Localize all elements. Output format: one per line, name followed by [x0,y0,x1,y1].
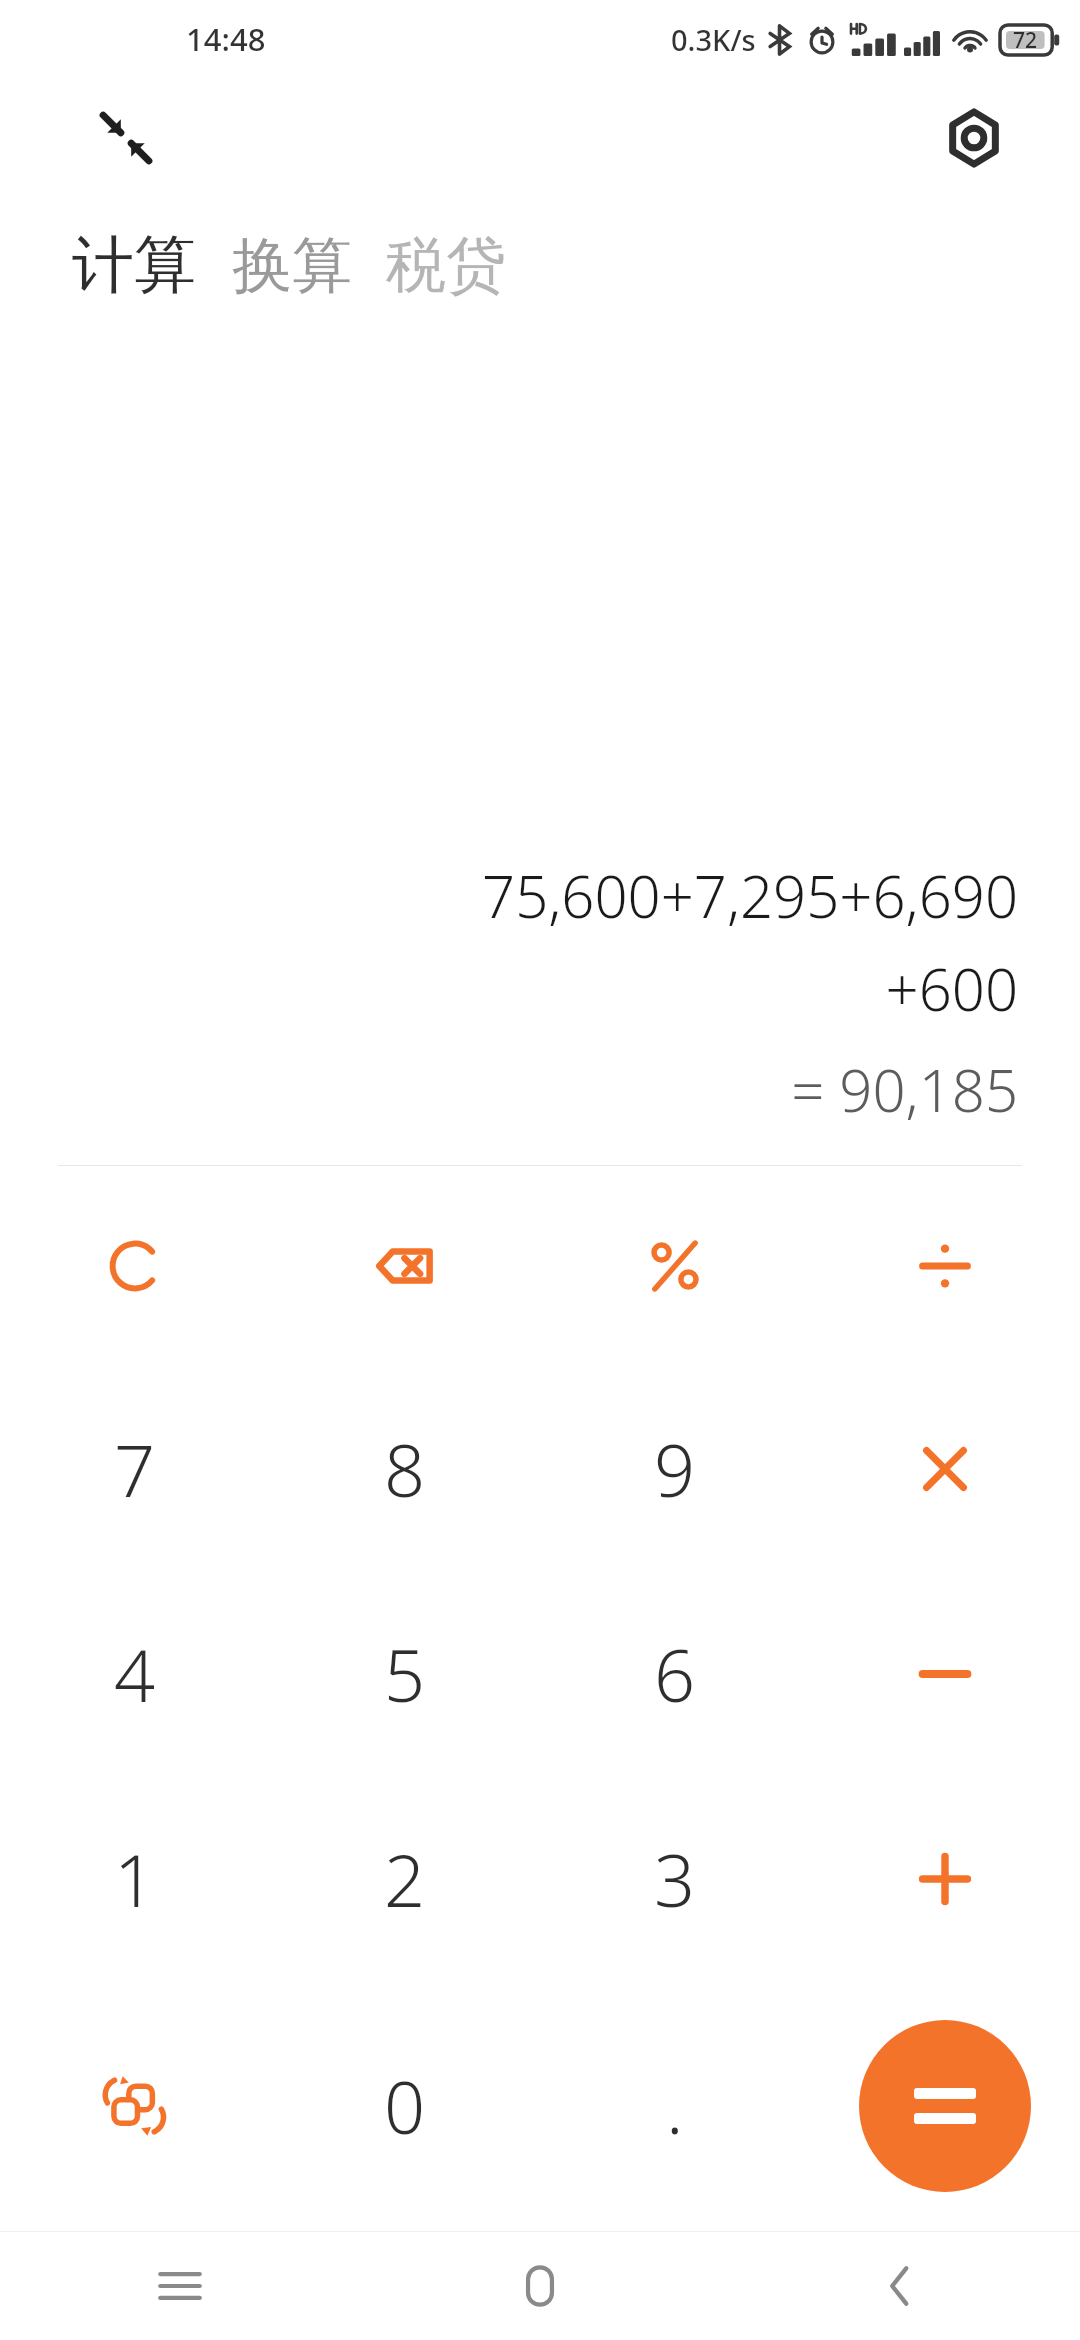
staticText: +600 [885,949,1018,1028]
staticText: = 90,185 [791,1050,1018,1129]
button[interactable]: Multiply [810,1366,1080,1571]
staticText: 计算 [72,226,196,304]
staticText: 9 [654,1420,696,1518]
staticText: 换算 [232,228,352,304]
button[interactable]: Back [720,2232,1080,2340]
button[interactable]: 8 [270,1366,540,1571]
button[interactable]: 1 [0,1776,270,1981]
button[interactable]: 0 [270,1981,540,2231]
staticText: 税贷 [386,228,506,304]
button[interactable]: Equals [859,2020,1031,2192]
staticText: 4 [114,1625,156,1723]
button[interactable]: Home [360,2232,720,2340]
button[interactable]: Clear [0,1166,270,1366]
staticText: 72 [1013,26,1038,55]
button[interactable]: 9 [540,1366,810,1571]
staticText: 7 [114,1420,156,1518]
staticText: 75,600+7,295+6,690 [482,856,1018,935]
staticText: . [666,2057,684,2155]
staticText: 3 [654,1830,696,1928]
button[interactable]: Plus [810,1776,1080,1981]
button[interactable]: 3 [540,1776,810,1981]
button[interactable]: 税贷 [382,222,510,310]
button[interactable]: 计算 [68,220,200,310]
staticText: 8 [384,1420,426,1518]
staticText: 1 [114,1830,156,1928]
button[interactable]: Collapse [80,92,172,184]
button[interactable]: 4 [0,1571,270,1776]
staticText: 0.3K/s [671,20,756,59]
button[interactable]: Recents [0,2232,360,2340]
button[interactable]: Percent [540,1166,810,1366]
staticText: 14:48 [186,18,266,60]
staticText: 0 [384,2057,426,2155]
button[interactable]: Settings [926,90,1022,186]
button[interactable]: Convert units [0,1981,270,2231]
staticText: 5 [384,1625,426,1723]
button[interactable]: Divide [810,1166,1080,1366]
button[interactable]: 6 [540,1571,810,1776]
staticText: 2 [384,1830,426,1928]
button[interactable]: Backspace [270,1166,540,1366]
button[interactable]: Minus [810,1571,1080,1776]
button[interactable]: 7 [0,1366,270,1571]
button[interactable]: 换算 [228,222,356,310]
button[interactable]: 2 [270,1776,540,1981]
button[interactable]: . [540,1981,810,2231]
staticText: 6 [654,1625,696,1723]
button[interactable]: 5 [270,1571,540,1776]
